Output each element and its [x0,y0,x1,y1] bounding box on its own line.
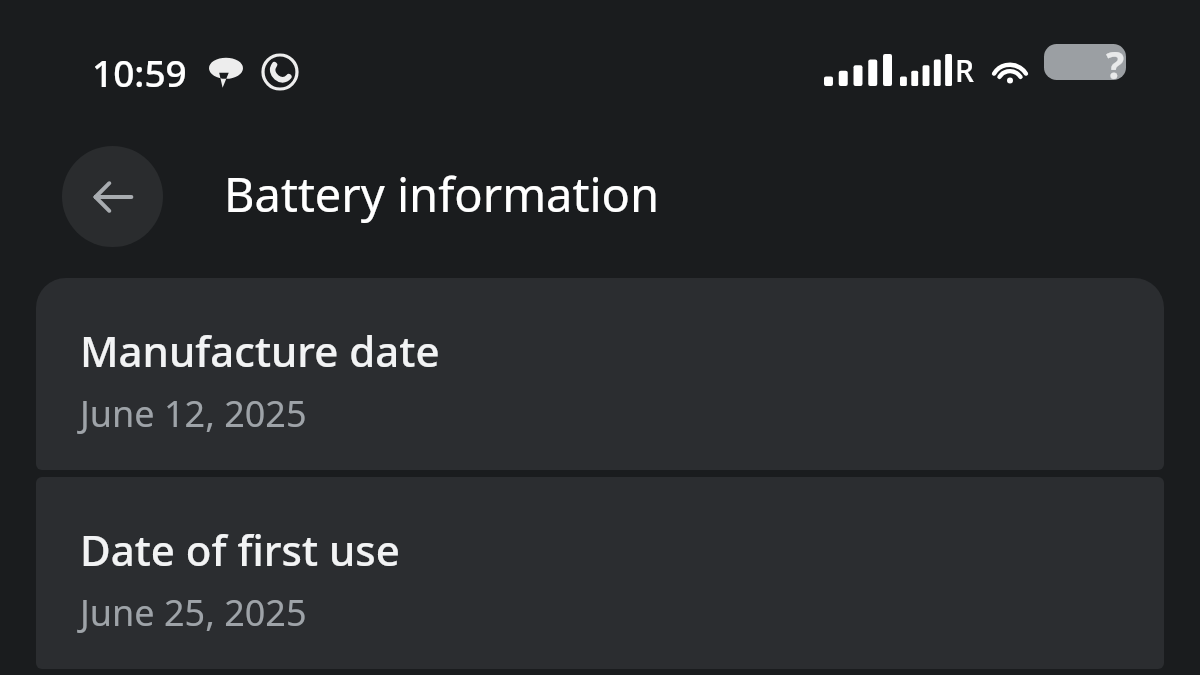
button[interactable]: Manufacture date [36,278,1164,470]
button[interactable]: Date of first use [36,477,1164,669]
staticText: 10:59 [92,47,187,97]
staticText: Battery information [224,162,660,226]
staticText: Manufacture date [80,322,440,379]
staticText: Date of first use [80,521,400,578]
staticText: June 25, 2025 [80,588,307,637]
staticText: R [955,50,974,91]
staticText: June 12, 2025 [80,389,307,438]
staticText: ? [1106,38,1125,90]
button[interactable]: Back [62,146,163,247]
